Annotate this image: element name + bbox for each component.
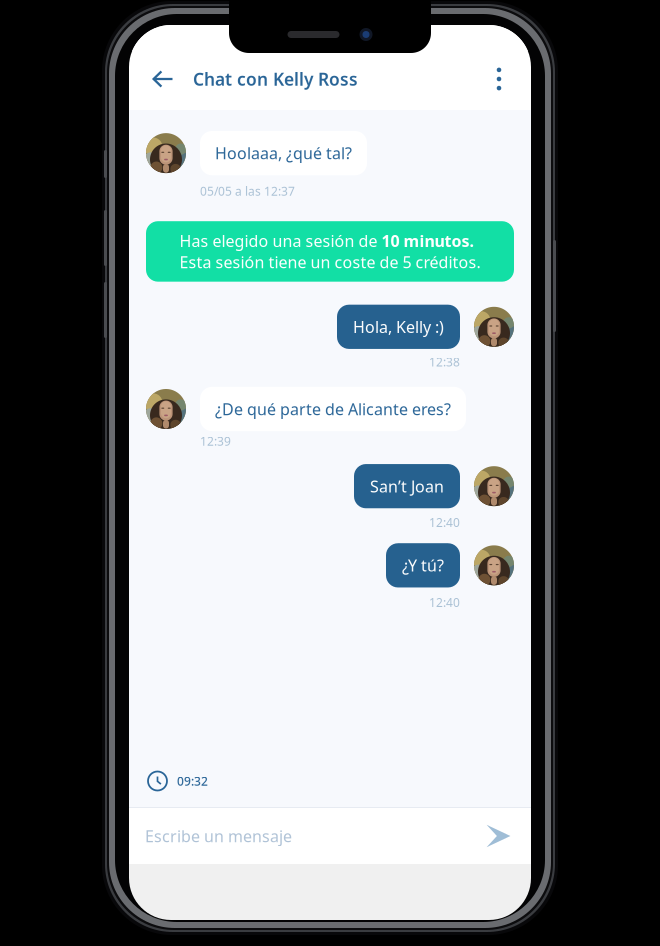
staticText: ¿Y tú? <box>402 555 444 576</box>
staticText: San’t Joan <box>370 475 444 497</box>
staticText: 12:40 <box>429 514 460 530</box>
staticText: Hola, Kelly :) <box>353 316 444 337</box>
staticText: Has elegido una sesión de 10 minutos. Es… <box>179 230 480 273</box>
button[interactable]: Send <box>486 824 511 848</box>
staticText: ¿De qué parte de Alicante eres? <box>215 398 451 420</box>
staticText: Chat con Kelly Ross <box>193 67 358 90</box>
staticText: Escribe un mensaje <box>145 825 292 847</box>
staticText: 12:39 <box>200 433 231 449</box>
staticText: 12:40 <box>429 594 460 610</box>
staticText: Hoolaaa, ¿qué tal? <box>215 142 352 164</box>
staticText: 05/05 a las 12:37 <box>200 183 295 199</box>
button[interactable]: More options <box>477 51 521 107</box>
button[interactable]: Back <box>139 51 187 107</box>
staticText: 12:38 <box>429 354 460 370</box>
staticText: 09:32 <box>177 773 208 789</box>
